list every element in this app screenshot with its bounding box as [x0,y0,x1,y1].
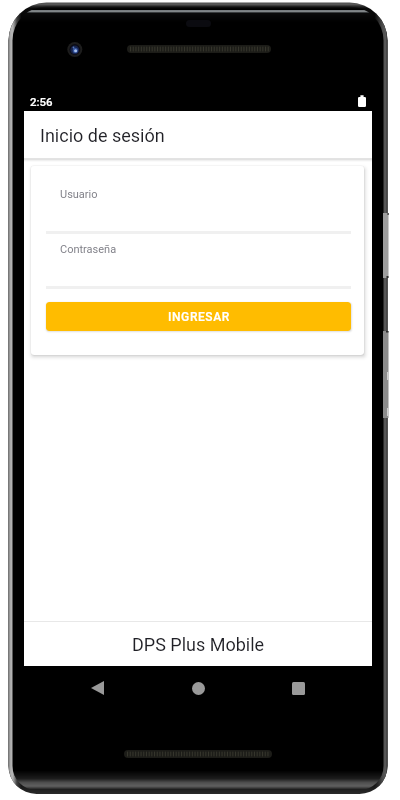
staticText: INGRESAR [168,310,230,324]
staticText: Inicio de sesión [40,125,165,146]
button[interactable]: Recent apps [269,671,327,705]
button[interactable]: INGRESAR [46,302,351,331]
staticText: 2:56 [30,95,53,108]
staticText: Usuario [60,188,98,201]
button[interactable]: DPS Plus Mobile [24,622,372,666]
button[interactable]: Home [169,671,227,705]
button[interactable]: Back [68,671,126,705]
staticText: Contraseña [60,243,117,256]
staticText: DPS Plus Mobile [132,634,265,655]
